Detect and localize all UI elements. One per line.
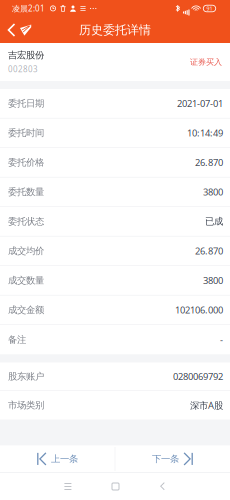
staticText: 0280069792 bbox=[173, 370, 223, 383]
staticText: 委托数量 bbox=[8, 186, 44, 198]
staticText: 备注 bbox=[8, 334, 26, 345]
staticText: 成交金额 bbox=[8, 304, 44, 316]
staticText: 股东账户 bbox=[8, 371, 44, 382]
button[interactable]: Recent apps bbox=[0, 473, 112, 500]
staticText: 26.870 bbox=[195, 245, 223, 257]
button[interactable]: Back bbox=[160, 473, 165, 500]
staticText: 已成 bbox=[205, 216, 223, 227]
staticText: 2021-07-01 bbox=[177, 97, 223, 110]
button[interactable]: Back bbox=[0, 17, 39, 43]
staticText: 成交均价 bbox=[8, 245, 44, 257]
staticText: 历史委托详情 bbox=[79, 23, 151, 37]
staticText: 3800 bbox=[203, 274, 223, 287]
staticText: 吉宏股份 bbox=[8, 49, 44, 61]
staticText: 成交数量 bbox=[8, 275, 44, 286]
staticText: 91 bbox=[206, 5, 212, 12]
button[interactable]: Home bbox=[112, 473, 160, 500]
staticText: 002803 bbox=[8, 64, 38, 74]
staticText: 10:14:49 bbox=[187, 127, 223, 139]
staticText: 下一条 bbox=[152, 453, 179, 465]
staticText: 凌晨2:01 bbox=[12, 3, 45, 14]
staticText: 深市A股 bbox=[190, 399, 223, 411]
staticText: 证券买入 bbox=[190, 57, 222, 67]
staticText: 委托时间 bbox=[8, 127, 44, 139]
button[interactable]: 上一条 bbox=[0, 445, 115, 472]
staticText: 上一条 bbox=[51, 453, 78, 465]
staticText: - bbox=[220, 334, 223, 346]
staticText: 102106.000 bbox=[175, 304, 223, 316]
staticText: 26.870 bbox=[195, 156, 223, 169]
button[interactable]: 下一条 bbox=[115, 445, 230, 472]
staticText: 市场类别 bbox=[8, 399, 44, 411]
staticText: 委托日期 bbox=[8, 98, 44, 109]
staticText: 委托价格 bbox=[8, 157, 44, 168]
staticText: 委托状态 bbox=[8, 216, 44, 227]
staticText: 3800 bbox=[203, 186, 223, 198]
